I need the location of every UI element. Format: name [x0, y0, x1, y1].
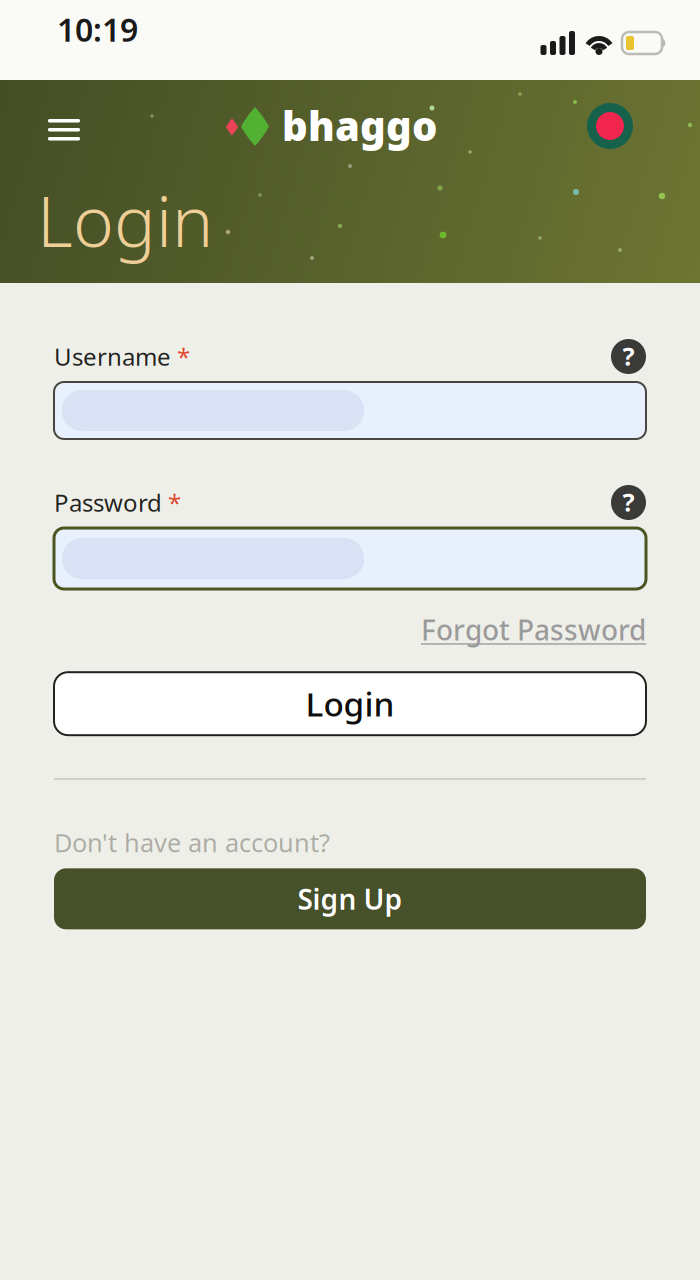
button[interactable] — [40, 111, 88, 148]
staticText: * — [162, 487, 181, 518]
button[interactable] — [587, 103, 633, 149]
button[interactable]: Sign Up — [54, 868, 646, 929]
staticText: Sign Up — [297, 880, 402, 917]
staticText: Don't have an account? — [54, 826, 330, 859]
staticText: Password — [54, 487, 162, 518]
staticText: 10:19 — [57, 8, 138, 50]
staticText: Login — [37, 174, 213, 266]
button[interactable]: ? — [611, 339, 646, 374]
staticText: Forgot Password — [421, 611, 646, 648]
staticText: bhaggo — [282, 99, 437, 152]
button[interactable] — [54, 528, 646, 589]
button[interactable]: ? — [611, 485, 646, 520]
staticText: ? — [622, 339, 634, 373]
staticText: ? — [622, 485, 634, 519]
staticText: Username — [54, 341, 171, 372]
button[interactable]: Login — [54, 672, 646, 735]
button[interactable]: Forgot Password — [421, 611, 646, 648]
staticText: * — [171, 341, 190, 372]
button[interactable] — [54, 382, 646, 439]
staticText: Login — [305, 682, 394, 726]
